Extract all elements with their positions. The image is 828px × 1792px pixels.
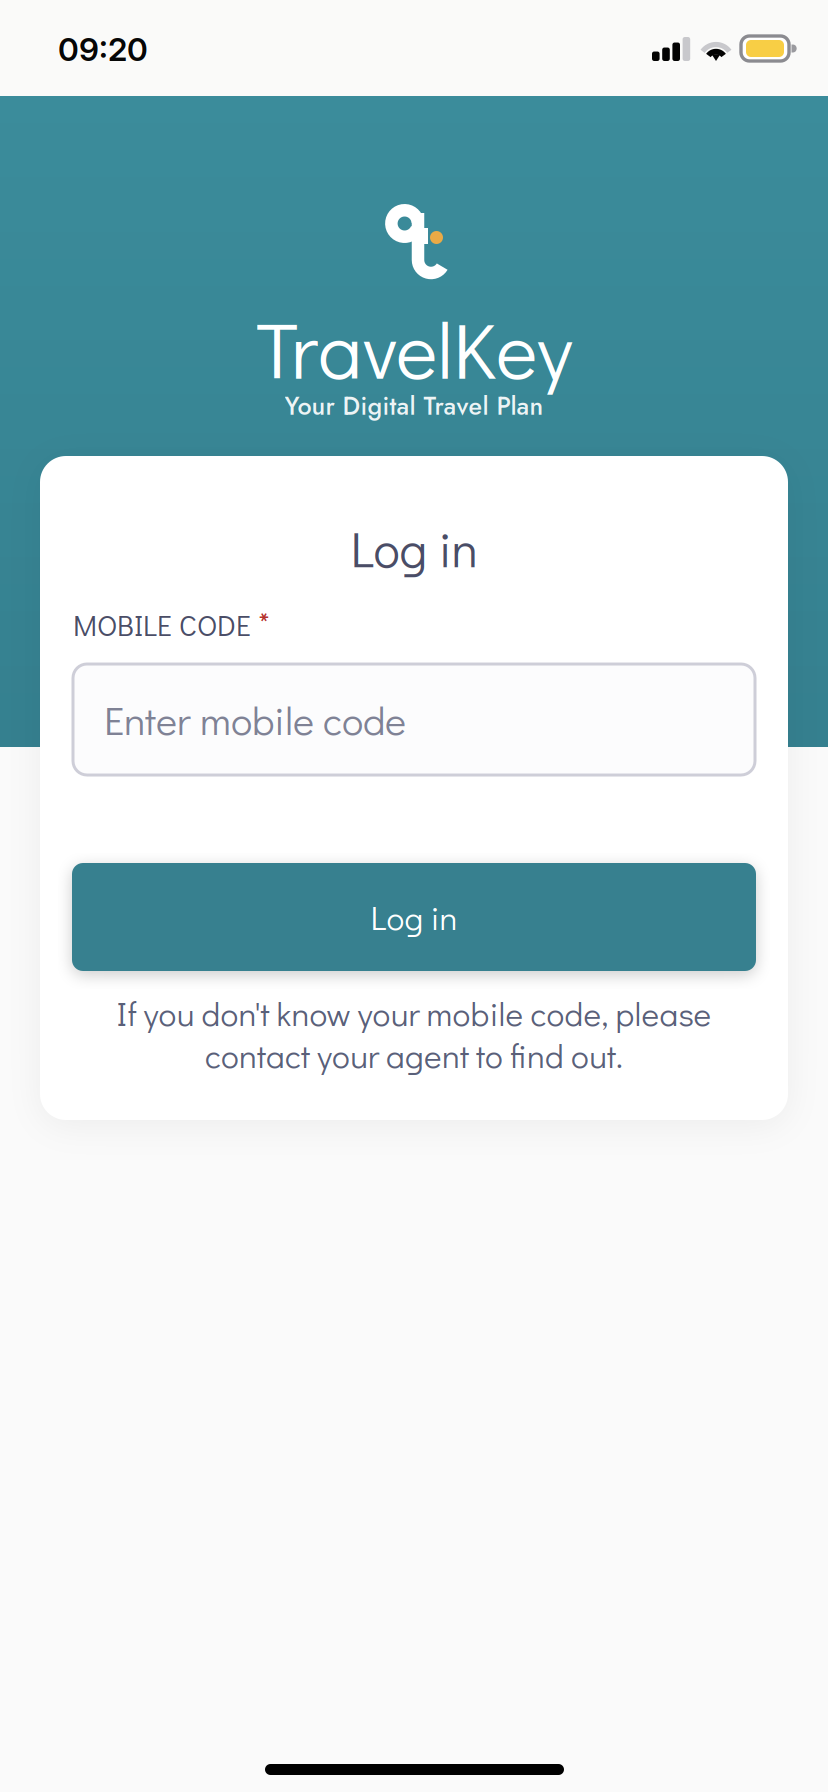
staticText: TravelKey [256, 296, 572, 399]
button[interactable]: Enter mobile code [73, 664, 755, 775]
button[interactable]: Log in [72, 863, 756, 971]
staticText: contact your agent to find out. [205, 1033, 623, 1077]
staticText: Log in [370, 895, 457, 939]
staticText: If you don't know your mobile code, plea… [116, 991, 711, 1035]
staticText: Your Digital Travel Plan [284, 388, 543, 424]
staticText: 09:20 [58, 30, 148, 69]
staticText: * [258, 601, 270, 645]
staticText: MOBILE CODE [73, 605, 251, 644]
staticText: Enter mobile code [104, 693, 406, 746]
staticText: Log in [350, 516, 477, 580]
